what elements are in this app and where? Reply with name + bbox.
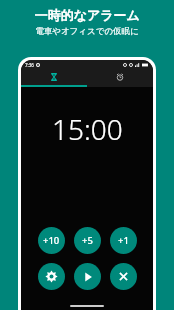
button[interactable]: Start [74,263,101,290]
button[interactable]: +5 [74,227,101,254]
staticText: 15:00 [52,110,123,148]
button[interactable]: Timer tab [21,69,87,85]
button[interactable]: +1 [110,227,137,254]
staticText: 電車やオフィスでの仮眠に [35,26,139,37]
staticText: 7:36 [25,62,34,68]
button[interactable]: +10 [38,227,65,254]
button[interactable]: Alarm tab [87,69,153,85]
staticText: 一時的なアラーム [34,7,140,23]
button[interactable]: Settings [38,263,65,290]
button[interactable]: Cancel [110,263,137,290]
staticText: +5 [82,234,93,247]
staticText: +1 [118,234,129,247]
staticText: +10 [43,234,60,247]
